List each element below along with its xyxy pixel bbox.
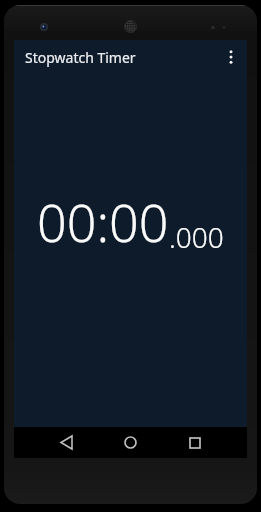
button[interactable]: Back (44, 427, 88, 458)
button[interactable]: Home (108, 427, 152, 458)
button[interactable]: More options (215, 41, 247, 73)
button[interactable]: 00:00 (14, 186, 247, 257)
staticText: Stopwatch Timer (25, 48, 136, 67)
button[interactable]: Recent apps (173, 427, 217, 458)
staticText: 00:00 (37, 186, 169, 257)
staticText: .000 (169, 218, 224, 256)
